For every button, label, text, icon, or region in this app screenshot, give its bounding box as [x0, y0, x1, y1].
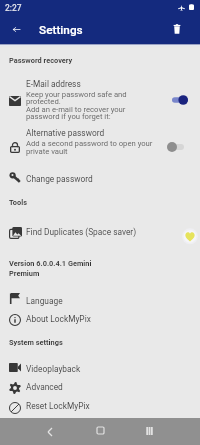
staticText: Tools: [9, 198, 27, 207]
button[interactable]: Alternative password: [0, 124, 200, 164]
staticText: Version 6.0.0.4.1 Gemini: [9, 259, 92, 268]
button[interactable]: Enabled: [166, 91, 194, 109]
button[interactable]: Change password: [0, 167, 200, 192]
button[interactable]: Delete: [166, 18, 188, 40]
staticText: password if you forget it:: [26, 112, 111, 121]
staticText: Alternative password: [26, 128, 105, 138]
button[interactable]: Back: [5, 18, 27, 40]
staticText: About LockMyPix: [26, 314, 91, 324]
staticText: Add an e-mail to recover your: [26, 105, 126, 114]
button[interactable]: Home: [88, 418, 112, 445]
button[interactable]: E-Mail address: [0, 45, 200, 120]
button[interactable]: Videoplayback: [0, 357, 200, 375]
staticText: System settings: [9, 338, 63, 347]
staticText: Language: [26, 296, 63, 306]
staticText: Change password: [26, 174, 93, 184]
staticText: Find Duplicates (Space saver): [26, 227, 137, 237]
staticText: Reset LockMyPix: [26, 401, 90, 411]
staticText: Videoplayback: [26, 364, 81, 374]
button[interactable]: Advanced: [0, 376, 200, 395]
staticText: private vault: [26, 147, 68, 156]
staticText: Settings: [39, 23, 83, 37]
button[interactable]: Disabled: [161, 138, 190, 156]
staticText: Advanced: [26, 382, 63, 392]
staticText: Keep your password safe and: [26, 90, 127, 99]
button[interactable]: Find Duplicates (Space saver): [0, 220, 200, 247]
button[interactable]: Language: [0, 289, 200, 307]
staticText: Premium: [9, 269, 40, 278]
staticText: Password recovery: [9, 56, 73, 65]
button[interactable]: Premium feature: [182, 228, 198, 244]
button[interactable]: Reset LockMyPix: [0, 395, 200, 414]
button[interactable]: About LockMyPix: [0, 307, 200, 325]
button[interactable]: Recent apps: [138, 418, 162, 445]
staticText: Add a second password to open your: [26, 139, 153, 148]
button[interactable]: Back: [38, 418, 62, 445]
staticText: 2:27: [5, 3, 22, 13]
staticText: protected.: [26, 97, 61, 106]
staticText: E-Mail address: [26, 79, 81, 89]
